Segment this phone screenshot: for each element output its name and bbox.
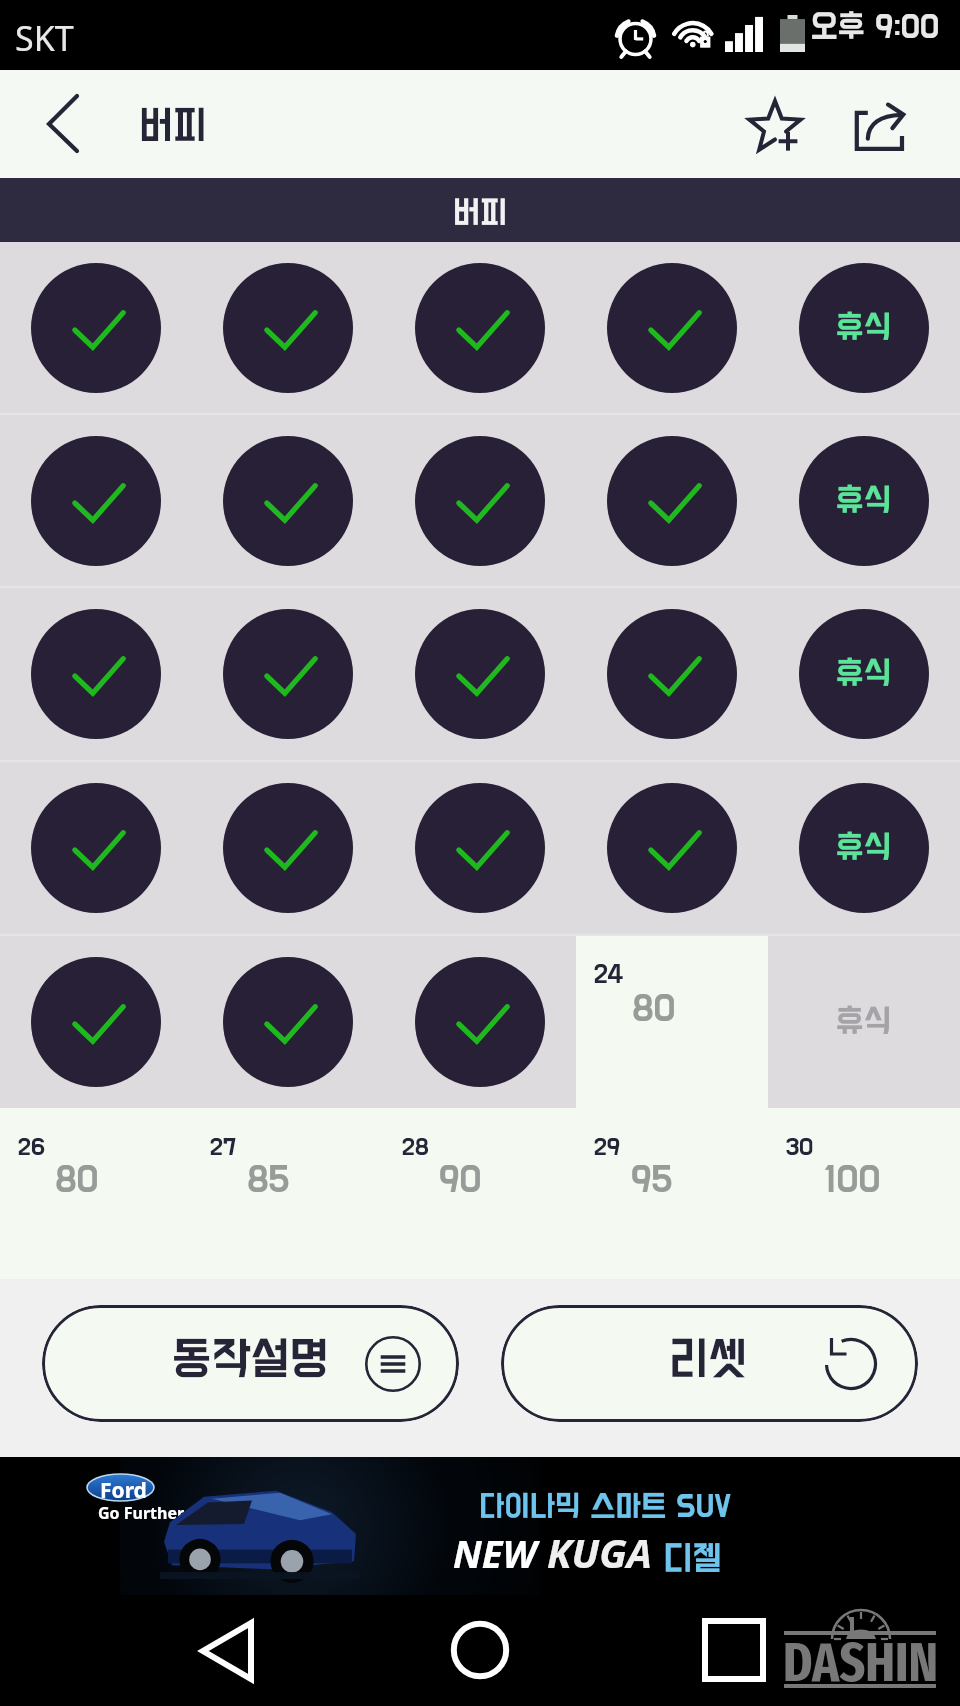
staticText: 100	[823, 1160, 881, 1200]
staticText: 80	[632, 989, 676, 1029]
button[interactable]	[192, 242, 384, 413]
button[interactable]	[0, 588, 192, 760]
button[interactable]	[384, 415, 576, 586]
button[interactable]: Back	[0, 70, 118, 178]
button[interactable]	[576, 762, 768, 934]
staticText: 리셋	[669, 1335, 748, 1386]
staticText: Go Further	[98, 1502, 185, 1524]
button[interactable]	[0, 762, 192, 934]
staticText: DASHIN	[783, 1631, 938, 1696]
button[interactable]: 리셋	[501, 1305, 918, 1422]
staticText: NEW	[453, 1527, 547, 1579]
button[interactable]: Share	[834, 70, 938, 178]
button[interactable]: 휴식	[768, 415, 960, 586]
staticText: 28	[402, 1134, 429, 1160]
button[interactable]: 휴식	[768, 242, 960, 413]
button[interactable]: 동작설명	[42, 1305, 459, 1422]
staticText: 29	[594, 1134, 620, 1160]
button[interactable]	[576, 588, 768, 760]
button[interactable]: Recents	[679, 1600, 789, 1700]
staticText: 95	[631, 1160, 673, 1200]
staticText: 26	[18, 1134, 46, 1160]
staticText: 휴식	[836, 1004, 892, 1040]
button[interactable]	[0, 936, 192, 1108]
button[interactable]	[0, 415, 192, 586]
button[interactable]: 휴식	[768, 936, 960, 1108]
staticText: Ford	[100, 1476, 147, 1505]
staticText: SKT	[15, 15, 74, 61]
button[interactable]	[384, 242, 576, 413]
staticText: 오후 9:00	[811, 10, 940, 45]
staticText: 버피	[139, 105, 207, 149]
staticText: 동작설명	[172, 1335, 329, 1386]
button[interactable]	[192, 936, 384, 1108]
button[interactable]: Home	[425, 1600, 535, 1700]
staticText: 27	[210, 1134, 237, 1160]
button[interactable]: 휴식	[768, 762, 960, 934]
button[interactable]	[384, 936, 576, 1108]
staticText: 디젤	[652, 1541, 722, 1579]
staticText: 휴식	[836, 830, 892, 866]
staticText: 80	[55, 1160, 99, 1200]
staticText: KUGA	[547, 1525, 652, 1579]
button[interactable]: 휴식	[768, 588, 960, 760]
button[interactable]: Add to favorites	[716, 70, 834, 178]
staticText: 30	[786, 1134, 814, 1160]
staticText: 버피	[453, 196, 507, 231]
button[interactable]	[192, 588, 384, 760]
button[interactable]	[384, 588, 576, 760]
button[interactable]	[192, 762, 384, 934]
staticText: 다이나믹 스마트 SUV	[479, 1491, 732, 1524]
button[interactable]	[0, 242, 192, 413]
button[interactable]	[576, 415, 768, 586]
staticText: 휴식	[836, 310, 892, 346]
staticText: 85	[247, 1160, 290, 1200]
button[interactable]	[576, 242, 768, 413]
staticText: 24	[594, 961, 624, 989]
button[interactable]	[192, 415, 384, 586]
staticText: 휴식	[836, 483, 892, 519]
button[interactable]: 24	[576, 936, 768, 1108]
staticText: 90	[439, 1160, 482, 1200]
button[interactable]: Back	[172, 1601, 282, 1701]
staticText: 휴식	[836, 656, 892, 692]
button[interactable]	[384, 762, 576, 934]
